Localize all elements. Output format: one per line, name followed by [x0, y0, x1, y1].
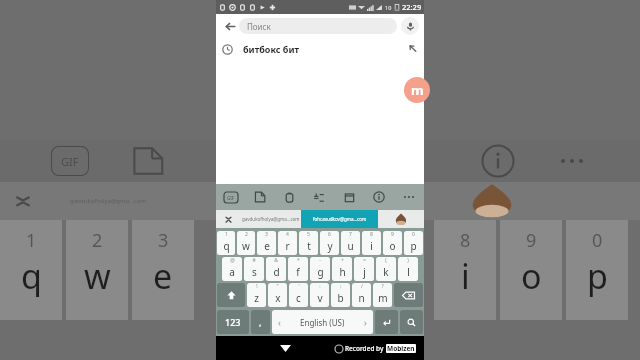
- staticText: 8: [370, 231, 373, 238]
- button[interactable]: Chestnut emoji: [378, 210, 424, 228]
- button[interactable]: Calendar: [334, 184, 364, 210]
- button[interactable]: Search: [400, 310, 423, 334]
- button[interactable]: Voice search: [401, 17, 419, 35]
- button[interactable]: +: [332, 257, 352, 281]
- staticText: 3: [265, 231, 268, 238]
- button[interactable]: /: [352, 283, 371, 307]
- button[interactable]: 0: [404, 231, 423, 255]
- button[interactable]: Collapse suggestions: [216, 210, 240, 228]
- staticText: =: [363, 257, 366, 264]
- staticText: 0: [412, 231, 415, 238]
- staticText: a: [229, 265, 235, 279]
- staticText: ?: [381, 283, 384, 290]
- button[interactable]: 7: [341, 231, 360, 255]
- staticText: 8: [460, 228, 471, 253]
- staticText: u: [347, 239, 354, 253]
- staticText: gavdukofholya@gma...com: [242, 216, 300, 222]
- button[interactable]: Info: [364, 184, 394, 210]
- staticText: l: [407, 265, 410, 279]
- button[interactable]: *: [288, 257, 308, 281]
- button[interactable]: Translate: [304, 184, 334, 210]
- staticText: *: [297, 257, 300, 264]
- button[interactable]: ;: [331, 283, 350, 307]
- staticText: Mobizen: [387, 344, 415, 353]
- button[interactable]: Backspace: [394, 283, 423, 307]
- button[interactable]: !: [247, 283, 266, 307]
- staticText: !: [256, 283, 258, 290]
- staticText: o: [389, 239, 396, 253]
- staticText: 9: [391, 231, 394, 238]
- other: Insert query: [408, 44, 418, 54]
- button[interactable]: ': [289, 283, 308, 307]
- staticText: m: [378, 291, 388, 305]
- staticText: v: [317, 291, 323, 305]
- staticText: p: [410, 239, 417, 253]
- staticText: s: [252, 265, 257, 279]
- button[interactable]: :: [310, 283, 329, 307]
- button[interactable]: #: [244, 257, 264, 281]
- button[interactable]: fohcavudkov@gma...com: [301, 210, 378, 228]
- button[interactable]: 2: [237, 231, 255, 255]
- button[interactable]: Clipboard: [274, 184, 304, 210]
- button[interactable]: =: [354, 257, 374, 281]
- button[interactable]: ,: [251, 310, 270, 334]
- staticText: w: [242, 239, 250, 253]
- staticText: Recorded by: [345, 344, 386, 353]
- staticText: ›: [364, 316, 367, 328]
- button[interactable]: 5: [299, 231, 318, 255]
- button[interactable]: Поиск: [239, 18, 397, 34]
- staticText: -: [319, 257, 321, 264]
- staticText: j: [363, 265, 366, 279]
- button[interactable]: More: [394, 184, 424, 210]
- staticText: x: [275, 291, 281, 305]
- button[interactable]: @: [222, 257, 242, 281]
- button[interactable]: 123: [217, 310, 249, 334]
- button[interactable]: Shift: [217, 283, 245, 307]
- button[interactable]: Enter: [375, 310, 398, 334]
- button[interactable]: -: [310, 257, 330, 281]
- staticText: English (US): [300, 317, 345, 328]
- button[interactable]: GIF: [216, 184, 245, 210]
- staticText: Поиск: [247, 21, 271, 32]
- button[interactable]: ): [398, 257, 418, 281]
- button[interactable]: ‹: [272, 310, 373, 334]
- staticText: f: [296, 265, 300, 279]
- button[interactable]: Back: [221, 17, 239, 35]
- staticText: /: [361, 283, 363, 290]
- staticText: #: [252, 257, 256, 264]
- button[interactable]: 8: [362, 231, 381, 255]
- staticText: fohcavudkov@gma...com: [313, 216, 367, 222]
- staticText: h: [339, 265, 346, 279]
- staticText: битбокс бит: [243, 43, 300, 55]
- button[interactable]: 9: [383, 231, 402, 255]
- button[interactable]: 4: [278, 231, 297, 255]
- staticText: g: [317, 265, 324, 279]
- staticText: @: [230, 257, 235, 264]
- staticText: 2: [92, 228, 103, 253]
- button[interactable]: 6: [320, 231, 339, 255]
- button[interactable]: 3: [257, 231, 276, 255]
- staticText: o: [521, 253, 542, 299]
- staticText: 3: [158, 228, 169, 253]
- button[interactable]: ?: [373, 283, 392, 307]
- button[interactable]: Back: [276, 339, 294, 357]
- staticText: k: [383, 265, 389, 279]
- staticText: q: [21, 253, 42, 299]
- button[interactable]: (: [376, 257, 396, 281]
- button[interactable]: &: [266, 257, 286, 281]
- button[interactable]: ": [268, 283, 287, 307]
- staticText: w: [84, 253, 111, 299]
- staticText: 10: [385, 4, 392, 11]
- staticText: 4: [286, 231, 289, 238]
- staticText: 1: [26, 228, 37, 253]
- staticText: ,: [259, 316, 262, 328]
- button[interactable]: Sticker: [245, 184, 274, 210]
- staticText: gavdukofhslya@gma...com: [70, 197, 146, 205]
- staticText: r: [285, 239, 290, 253]
- staticText: e: [153, 253, 173, 299]
- staticText: +: [341, 257, 344, 264]
- button[interactable]: gavdukofholya@gma...com: [240, 210, 301, 228]
- button[interactable]: 1: [217, 231, 235, 255]
- staticText: ': [298, 283, 300, 290]
- button[interactable]: битбокс бит: [216, 38, 424, 60]
